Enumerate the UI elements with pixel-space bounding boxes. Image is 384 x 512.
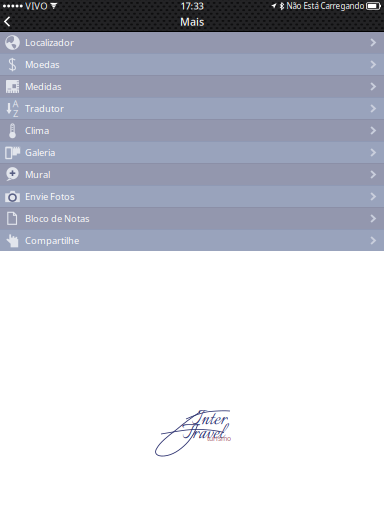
staticText: Bloco de Notas bbox=[25, 212, 89, 225]
staticText: Z bbox=[13, 107, 18, 120]
staticText: Localizador bbox=[25, 36, 74, 49]
staticText: Mural bbox=[25, 168, 50, 181]
staticText: Tradutor bbox=[25, 102, 64, 115]
staticText: Moedas bbox=[25, 58, 59, 71]
staticText: Galeria bbox=[25, 146, 55, 159]
staticText: Mais bbox=[180, 14, 204, 29]
staticText: turismo bbox=[207, 434, 231, 443]
staticText: A bbox=[13, 97, 19, 110]
button[interactable]: Clima bbox=[0, 119, 384, 141]
button[interactable]: Envie Fotos bbox=[0, 185, 384, 207]
button[interactable]: Back bbox=[0, 12, 15, 31]
staticText: VIVO bbox=[25, 0, 47, 12]
staticText: Clima bbox=[25, 124, 49, 137]
staticText: Medidas bbox=[25, 80, 61, 93]
staticText: Não Está Carregando bbox=[287, 1, 365, 11]
button[interactable]: Localizador bbox=[0, 31, 384, 53]
button[interactable]: Galeria bbox=[0, 141, 384, 163]
staticText: Travel bbox=[182, 419, 224, 449]
staticText: Inter bbox=[192, 405, 227, 435]
staticText: 17:33 bbox=[180, 0, 203, 12]
button[interactable]: Compartilhe bbox=[0, 229, 384, 251]
button[interactable]: A bbox=[0, 97, 384, 119]
button[interactable]: Medidas bbox=[0, 75, 384, 97]
button[interactable]: Moedas bbox=[0, 53, 384, 75]
button[interactable]: Mural bbox=[0, 163, 384, 185]
staticText: Envie Fotos bbox=[25, 190, 74, 203]
button[interactable]: Bloco de Notas bbox=[0, 207, 384, 229]
staticText: Compartilhe bbox=[25, 234, 79, 247]
